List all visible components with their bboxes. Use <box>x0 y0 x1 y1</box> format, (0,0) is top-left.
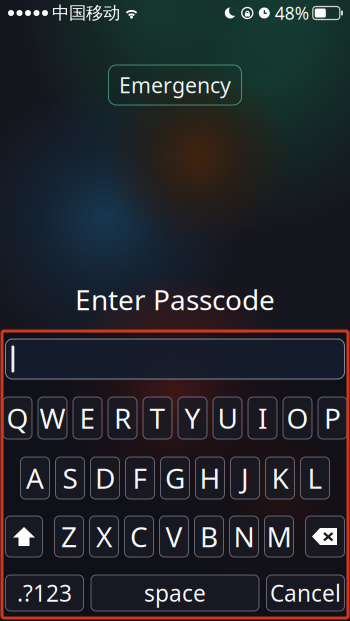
staticText: Enter Passcode <box>75 281 275 318</box>
button[interactable]: Y <box>178 397 207 439</box>
button[interactable]: M <box>264 516 293 557</box>
button[interactable]: Cancel <box>266 575 344 611</box>
staticText: F <box>132 459 147 497</box>
button[interactable]: W <box>38 397 67 439</box>
staticText: A <box>26 459 44 497</box>
button[interactable]: H <box>195 457 224 499</box>
button[interactable]: space <box>91 575 259 611</box>
staticText: R <box>114 399 131 437</box>
staticText: B <box>200 518 218 555</box>
button[interactable]: F <box>125 457 154 499</box>
button[interactable]: Shift <box>5 516 42 557</box>
staticText: W <box>39 399 65 437</box>
staticText: O <box>286 399 308 437</box>
button[interactable]: Q <box>3 397 32 439</box>
staticText: Z <box>61 518 77 555</box>
staticText: Q <box>6 399 28 437</box>
button[interactable]: C <box>124 516 153 557</box>
staticText: L <box>307 459 322 497</box>
button[interactable]: N <box>229 516 258 557</box>
button[interactable]: Z <box>54 516 83 557</box>
staticText: E <box>79 399 95 437</box>
button[interactable]: A <box>20 457 49 499</box>
staticText: 48% <box>275 1 309 24</box>
button[interactable]: O <box>283 397 312 439</box>
button[interactable]: V <box>159 516 188 557</box>
staticText: 中国移动 <box>52 2 120 24</box>
staticText: M <box>266 518 291 555</box>
button[interactable]: B <box>194 516 223 557</box>
staticText: U <box>217 399 237 437</box>
staticText: J <box>241 459 249 497</box>
staticText: space <box>144 578 206 608</box>
button[interactable]: P <box>318 397 347 439</box>
staticText: C <box>130 518 148 555</box>
staticText: Cancel <box>270 578 341 608</box>
button[interactable]: K <box>265 457 294 499</box>
button[interactable]: S <box>55 457 84 499</box>
staticText: D <box>95 459 115 497</box>
button[interactable]: I <box>248 397 277 439</box>
button[interactable]: L <box>300 457 329 499</box>
button[interactable]: Emergency <box>108 65 241 105</box>
staticText: X <box>96 518 112 555</box>
staticText: K <box>271 459 288 497</box>
staticText: Emergency <box>119 71 231 99</box>
staticText: H <box>199 459 220 497</box>
staticText: .?123 <box>17 578 72 608</box>
staticText: I <box>258 399 267 437</box>
staticText: T <box>149 399 165 437</box>
button[interactable]: G <box>160 457 189 499</box>
staticText: G <box>165 459 185 497</box>
button[interactable]: D <box>90 457 119 499</box>
staticText: S <box>62 459 77 497</box>
button[interactable]: T <box>143 397 172 439</box>
staticText: P <box>324 399 341 437</box>
button[interactable]: J <box>230 457 259 499</box>
staticText: Y <box>184 399 200 437</box>
staticText: V <box>165 518 182 555</box>
button[interactable]: Delete <box>305 516 344 557</box>
button[interactable]: U <box>213 397 242 439</box>
button[interactable]: X <box>89 516 118 557</box>
button[interactable]: .?123 <box>5 575 83 611</box>
staticText: N <box>233 518 254 555</box>
button[interactable]: E <box>73 397 102 439</box>
button[interactable]: R <box>108 397 137 439</box>
